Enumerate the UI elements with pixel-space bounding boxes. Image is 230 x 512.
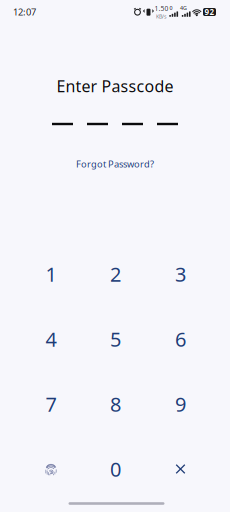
staticText: 0 (110, 456, 121, 482)
button[interactable]: 3 (150, 245, 210, 303)
button[interactable]: 2 (85, 245, 145, 303)
button[interactable]: 0 (85, 440, 145, 498)
button[interactable]: 9 (150, 375, 210, 433)
staticText: 4G (180, 4, 187, 12)
button[interactable]: 7 (21, 375, 81, 433)
staticText: 6 (175, 326, 186, 352)
staticText: 8 (110, 391, 121, 417)
button[interactable]: 1 (21, 245, 81, 303)
staticText: 92 (204, 7, 214, 17)
staticText: 5 (110, 326, 121, 352)
staticText: 4 (45, 326, 56, 352)
staticText: 3 (175, 261, 186, 287)
button[interactable]: 5 (85, 310, 145, 368)
button[interactable]: 6 (150, 310, 210, 368)
button[interactable]: 4 (21, 310, 81, 368)
button[interactable]: Delete (150, 440, 210, 498)
staticText: 12:07 (13, 6, 36, 18)
button[interactable]: 8 (85, 375, 145, 433)
staticText: 7 (45, 391, 56, 417)
staticText: Forgot Password? (76, 158, 154, 170)
staticText: 9 (175, 391, 186, 417)
button[interactable]: Unlock with fingerprint (21, 440, 81, 498)
staticText: Enter Passcode (56, 75, 173, 97)
staticText: 1 (45, 261, 56, 287)
staticText: KB/s (156, 13, 167, 20)
staticText: 2 (110, 261, 121, 287)
staticText: 1.50 (154, 4, 168, 13)
staticText: 0 (169, 4, 172, 12)
button[interactable]: Forgot Password? (68, 154, 162, 174)
